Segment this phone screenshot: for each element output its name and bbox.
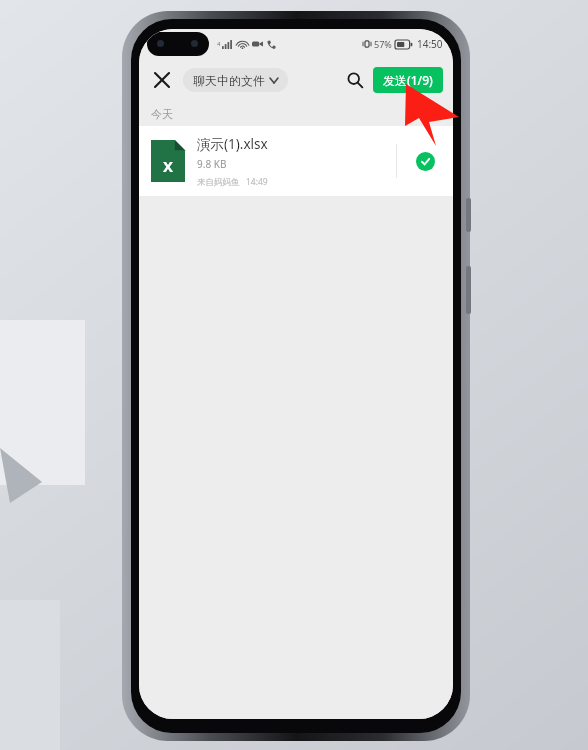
staticText: 9.8 KB (197, 157, 227, 171)
staticText: 来自妈妈鱼 (197, 177, 240, 188)
staticText: 聊天中的文件 (193, 73, 265, 88)
button[interactable]: 发送(1/9) (373, 67, 443, 93)
staticText: X (163, 156, 174, 176)
button[interactable]: Search (338, 63, 372, 97)
staticText: 发送(1/9) (383, 72, 433, 88)
staticText: 14:49 (246, 176, 268, 188)
button[interactable]: Close (145, 63, 179, 97)
button[interactable]: 聊天中的文件 (183, 68, 288, 92)
staticText: 今天 (151, 107, 173, 121)
staticText: 57% (374, 38, 392, 50)
staticText: 14:50 (417, 37, 443, 51)
button[interactable]: X (139, 126, 453, 196)
staticText: 4 (217, 40, 221, 48)
button[interactable]: Selected (397, 126, 453, 196)
staticText: 演示(1).xlsx (197, 135, 268, 153)
